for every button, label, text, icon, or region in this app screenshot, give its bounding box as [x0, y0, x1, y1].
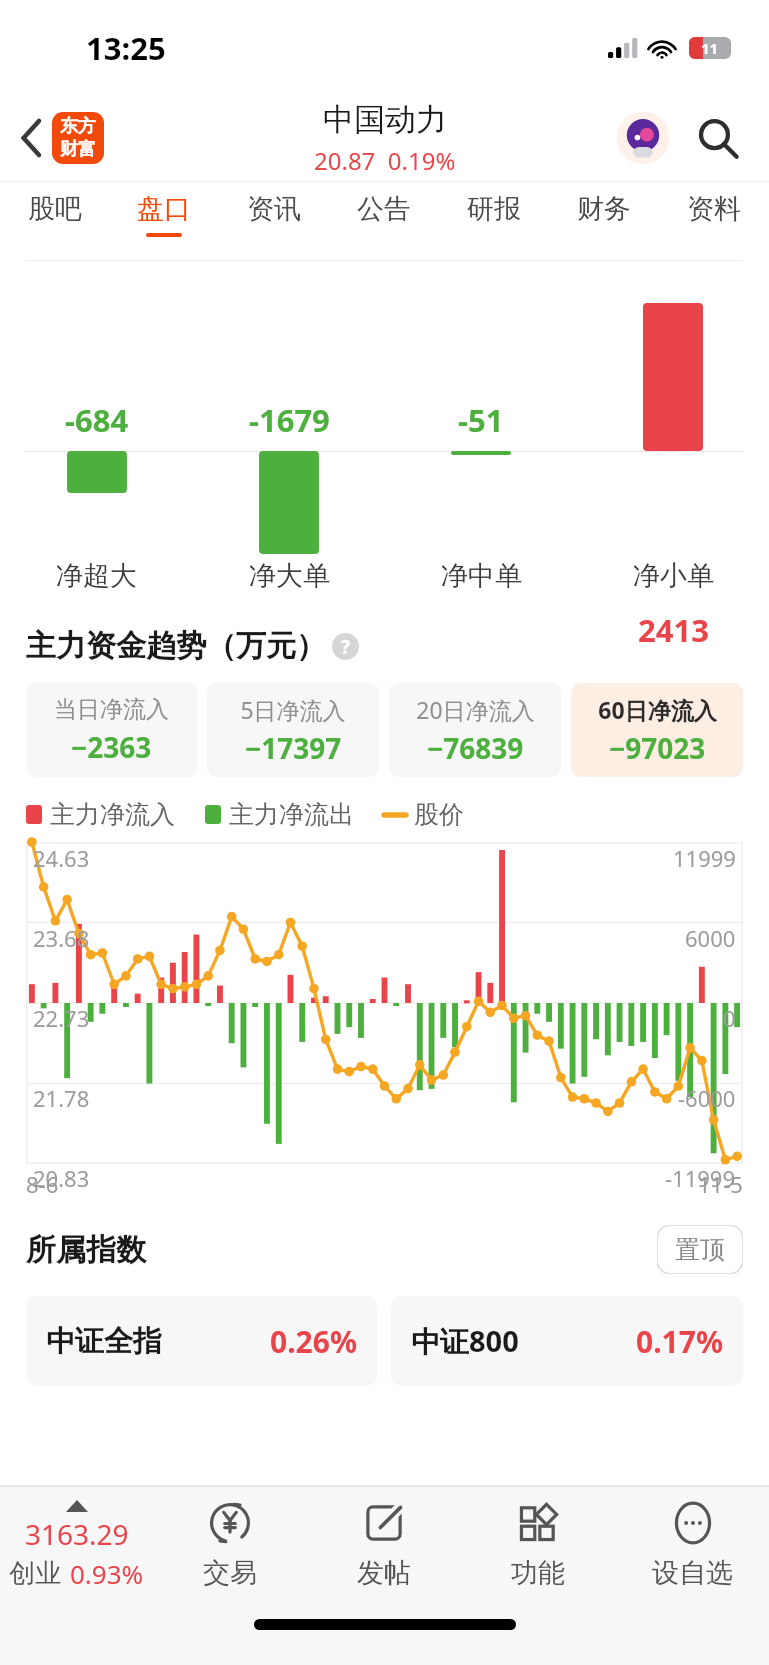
staticText: 所属指数 — [26, 1231, 146, 1269]
staticText: 0.93% — [70, 1556, 144, 1591]
button[interactable]: 发帖 — [307, 1487, 461, 1603]
staticText: 2413 — [638, 609, 709, 651]
staticText: 创业 — [9, 1557, 61, 1590]
staticText: 当日净流入 — [54, 695, 169, 724]
button[interactable]: Assistant — [615, 110, 671, 166]
staticText: 净大单 — [249, 559, 330, 593]
button[interactable]: 功能 — [461, 1487, 615, 1603]
button[interactable]: Back — [8, 114, 56, 162]
staticText: 设自选 — [652, 1556, 733, 1590]
staticText: 净小单 — [633, 559, 714, 593]
staticText: 20日净流入 — [416, 694, 535, 725]
button[interactable]: 中证800 — [391, 1296, 743, 1386]
button[interactable]: 资料 — [659, 182, 769, 246]
staticText: −97023 — [609, 729, 706, 767]
button[interactable]: 财务 — [549, 182, 659, 246]
staticText: −17397 — [245, 729, 342, 767]
staticText: -6000 — [678, 1083, 736, 1113]
button[interactable]: 研报 — [439, 182, 549, 246]
staticText: 21.78 — [33, 1083, 90, 1113]
button[interactable]: 资讯 — [219, 182, 329, 246]
staticText: 财务 — [577, 192, 631, 226]
button[interactable]: 5日净流入 — [207, 683, 379, 777]
staticText: 中证全指 — [46, 1323, 162, 1360]
staticText: −2363 — [71, 728, 152, 766]
staticText: -51 — [458, 399, 504, 441]
staticText: 中国动力 — [323, 100, 447, 139]
staticText: 财富 — [60, 138, 96, 161]
button[interactable]: 60日净流入 — [571, 683, 743, 777]
staticText: 盘口 — [137, 192, 191, 226]
staticText: ? — [341, 634, 351, 660]
staticText: 中证800 — [411, 1321, 519, 1361]
staticText: 置顶 — [675, 1234, 725, 1265]
staticText: 6000 — [685, 923, 736, 953]
staticText: 股价 — [414, 799, 464, 830]
button[interactable]: 公告 — [329, 182, 439, 246]
staticText: 交易 — [203, 1556, 257, 1590]
staticText: 净中单 — [441, 559, 522, 593]
button[interactable]: 创业 index — [0, 1487, 153, 1603]
staticText: 东方 — [60, 115, 96, 138]
staticText: 净超大 — [56, 559, 137, 593]
staticText: 11-5 — [698, 1169, 743, 1199]
staticText: 资料 — [687, 192, 741, 226]
button[interactable]: 当日净流入 — [26, 683, 197, 777]
button[interactable]: East Money logo — [52, 112, 104, 164]
staticText: 20.83 — [33, 1163, 90, 1193]
button[interactable]: 盘口 — [109, 182, 219, 246]
staticText: 5日净流入 — [240, 694, 346, 725]
button[interactable]: Help — [332, 633, 359, 660]
staticText: 13:25 — [86, 27, 166, 69]
button[interactable]: 中证全指 — [26, 1296, 377, 1386]
staticText: 主力净流入 — [50, 799, 175, 830]
staticText: −76839 — [427, 729, 524, 767]
button[interactable]: 交易 — [153, 1487, 307, 1603]
staticText: 0.17% — [636, 1321, 723, 1362]
staticText: 公告 — [357, 192, 411, 226]
button[interactable]: 置顶 — [675, 1234, 725, 1265]
staticText: 11 — [701, 38, 719, 58]
button[interactable]: 20日净流入 — [389, 683, 561, 777]
staticText: 22.73 — [33, 1003, 90, 1033]
button[interactable]: 设自选 — [615, 1487, 769, 1603]
staticText: 发帖 — [357, 1556, 411, 1590]
staticText: 60日净流入 — [598, 694, 717, 725]
staticText: 24.63 — [33, 843, 90, 873]
staticText: 股吧 — [28, 192, 82, 226]
staticText: 资讯 — [247, 192, 301, 226]
button[interactable]: Search — [689, 110, 745, 166]
staticText: 主力资金趋势（万元） — [26, 627, 326, 665]
staticText: 0.26% — [270, 1321, 357, 1362]
staticText: 主力净流出 — [229, 799, 354, 830]
staticText: -684 — [65, 399, 129, 441]
staticText: 8-6 — [26, 1169, 59, 1199]
staticText: 3163.29 — [25, 1515, 129, 1553]
staticText: -1679 — [249, 399, 330, 441]
staticText: 11999 — [673, 843, 736, 873]
staticText: 功能 — [511, 1556, 565, 1590]
staticText: 23.68 — [33, 923, 90, 953]
staticText: 20.87 0.19% — [314, 144, 456, 177]
staticText: 研报 — [467, 192, 521, 226]
button[interactable]: 股吧 — [0, 182, 109, 246]
staticText: -11999 — [665, 1163, 736, 1193]
staticText: 0 — [723, 1003, 736, 1033]
